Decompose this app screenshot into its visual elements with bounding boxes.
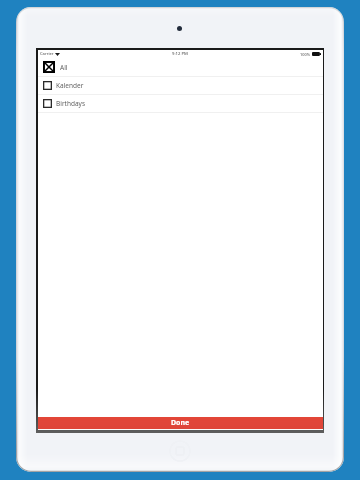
button[interactable]: Done bbox=[38, 417, 323, 429]
button[interactable]: All bbox=[38, 59, 323, 76]
staticText: Birthdays bbox=[56, 99, 86, 108]
button[interactable]: Birthdays bbox=[38, 95, 323, 112]
staticText: Carrier bbox=[40, 51, 54, 57]
button[interactable]: Kalender bbox=[38, 77, 323, 94]
staticText: Done bbox=[171, 418, 190, 428]
staticText: Kalender bbox=[56, 81, 84, 90]
staticText: All bbox=[60, 63, 68, 72]
staticText: 100% bbox=[300, 52, 310, 57]
staticText: 9:12 PM bbox=[172, 51, 188, 57]
